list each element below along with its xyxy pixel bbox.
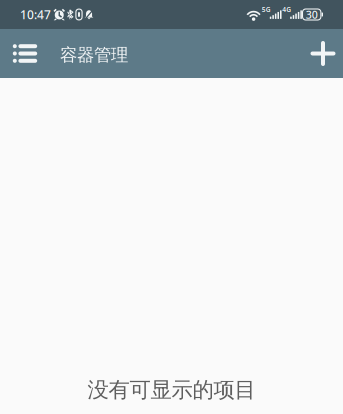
staticText: 4G: [282, 5, 291, 14]
staticText: 5G: [262, 5, 271, 14]
staticText: 没有可显示的项目: [87, 377, 255, 403]
staticText: 30: [306, 7, 318, 22]
staticText: 容器管理: [60, 44, 128, 66]
button[interactable]: Add: [301, 29, 343, 78]
button[interactable]: Menu: [6, 29, 44, 78]
staticText: 10:47: [20, 6, 51, 22]
